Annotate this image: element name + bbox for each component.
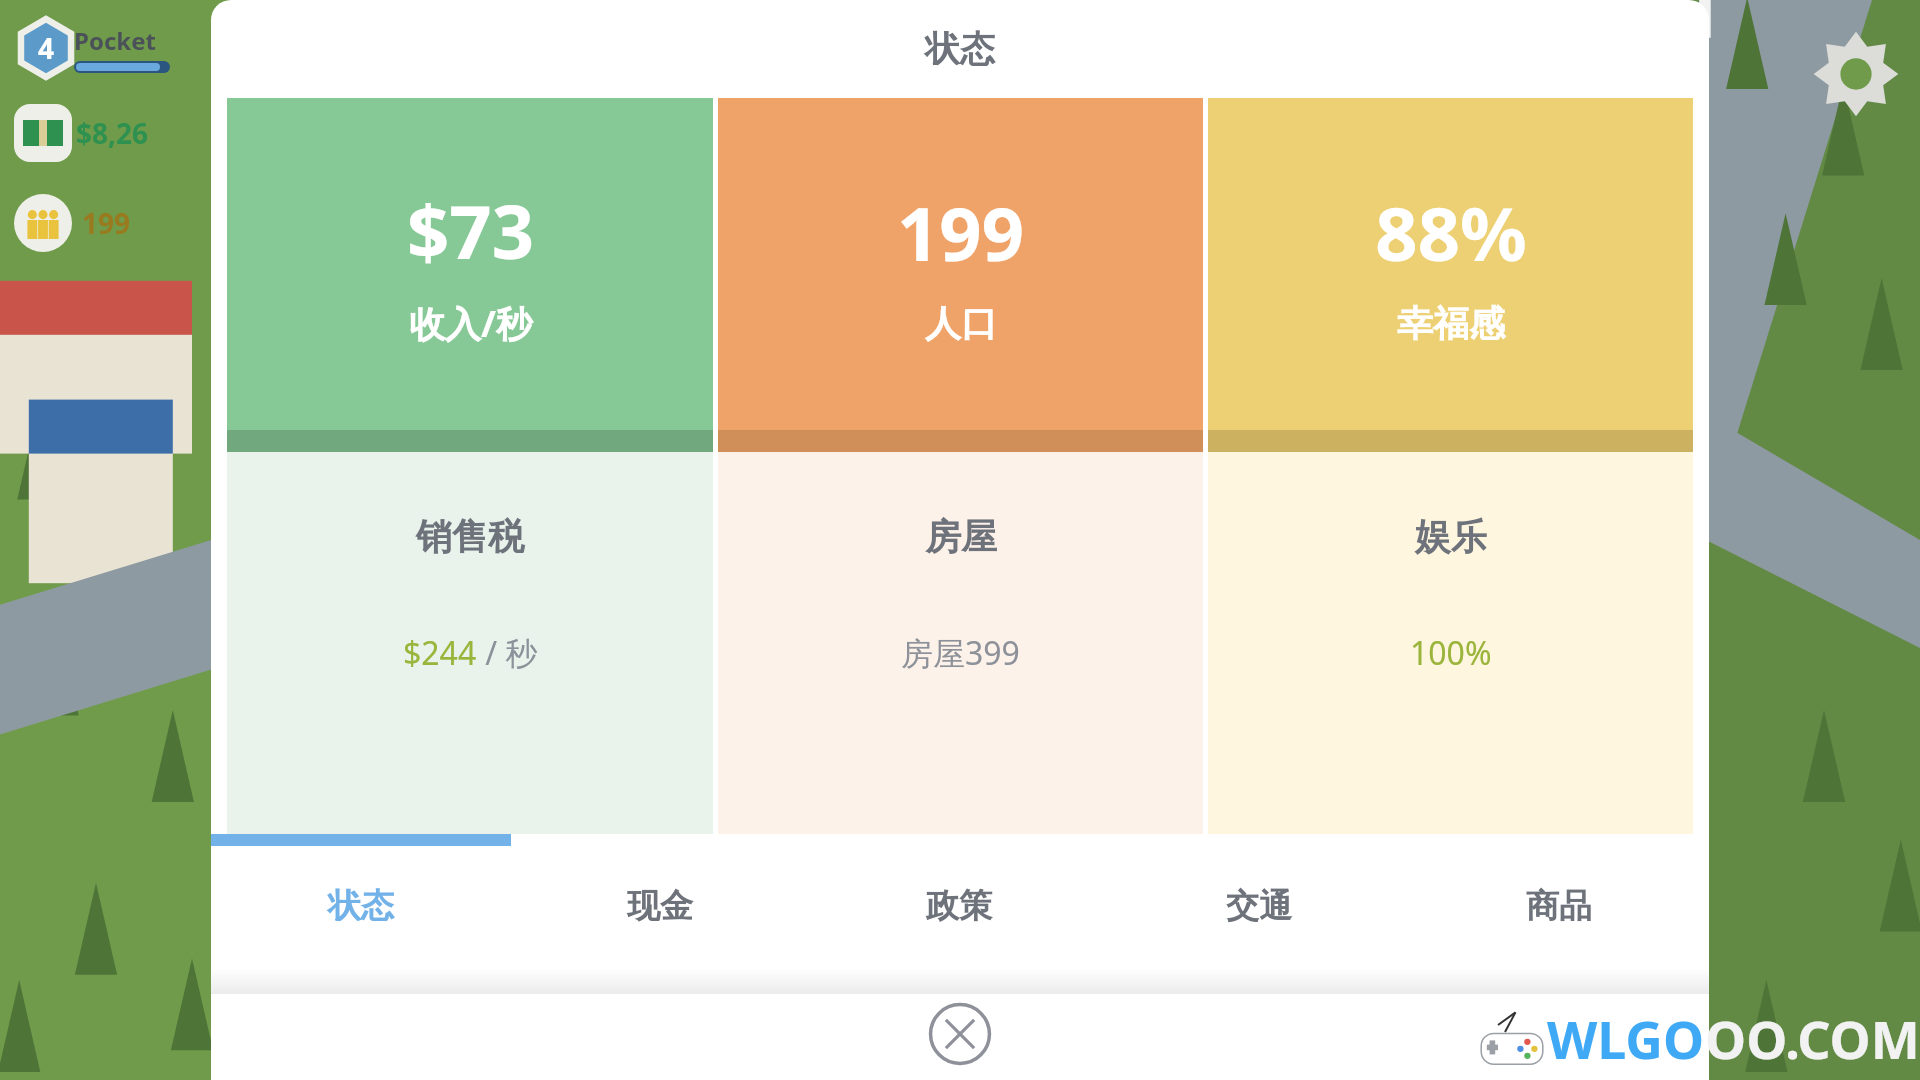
staticText: 100%	[1410, 631, 1492, 675]
staticText: 88%	[1375, 182, 1527, 283]
staticText: 商品	[1526, 885, 1592, 927]
staticText: 房屋	[925, 514, 997, 559]
staticText: 房屋399	[901, 631, 1020, 675]
staticText: 4	[38, 29, 55, 67]
staticText: 收入/秒	[409, 299, 532, 348]
staticText: $73	[407, 180, 534, 281]
staticText: 交通	[1226, 885, 1292, 927]
button[interactable]: 199	[718, 98, 1203, 834]
staticText: $8,26	[76, 114, 149, 152]
staticText: 幸福感	[1397, 301, 1505, 346]
button[interactable]: 88%	[1208, 98, 1693, 834]
button[interactable]: 商品	[1409, 846, 1709, 966]
button[interactable]: 现金	[510, 846, 809, 966]
staticText: 199	[897, 182, 1024, 283]
button[interactable]: Settings	[1810, 28, 1902, 120]
staticText: 政策	[926, 885, 992, 927]
staticText: 199	[82, 204, 131, 242]
staticText: 销售税	[416, 514, 524, 559]
staticText: $244	[403, 631, 477, 675]
staticText: Pocket	[74, 24, 156, 57]
button[interactable]: $73	[227, 98, 713, 834]
staticText: OO.COM	[1705, 1003, 1920, 1074]
button[interactable]: 状态	[211, 846, 510, 966]
button[interactable]: 政策	[809, 846, 1109, 966]
staticText: 娱乐	[1415, 514, 1487, 559]
staticText: / 秒	[477, 631, 538, 675]
staticText: WLGO	[1547, 1003, 1705, 1074]
button[interactable]: Close	[928, 1002, 992, 1066]
staticText: 人口	[925, 301, 997, 346]
staticText: 状态	[925, 27, 995, 71]
button[interactable]: 交通	[1109, 846, 1409, 966]
staticText: 状态	[328, 885, 394, 927]
staticText: 现金	[627, 885, 693, 927]
